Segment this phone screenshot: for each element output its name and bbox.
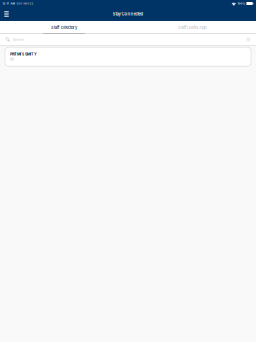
button[interactable]: Menu (1, 8, 12, 19)
staticText: GP (10, 58, 14, 61)
staticText: Staff Useful App (178, 25, 206, 30)
staticText: Staff Directory (51, 25, 77, 30)
button[interactable]: Staff Useful App (128, 21, 256, 34)
staticText: Stay Connected (112, 11, 143, 16)
staticText: 100% (236, 2, 246, 5)
button[interactable]: Prof Mrs SMITY (5, 47, 251, 66)
staticText: 12:17 AM (2, 2, 14, 5)
button[interactable]: Staff Directory (0, 21, 128, 34)
staticText: Search (13, 37, 24, 42)
staticText: Prof Mrs SMITY (10, 52, 37, 56)
staticText: Sun Nov 22 (14, 2, 33, 5)
